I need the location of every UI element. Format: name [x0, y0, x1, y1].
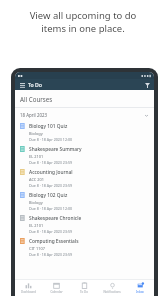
staticText: View all upcoming to do items in one pla…	[8, 9, 158, 35]
button[interactable]: Biology 102 Quiz	[15, 190, 154, 213]
staticText: EL 2101	[29, 223, 44, 228]
button[interactable]: Inbox	[126, 280, 154, 296]
staticText: Notifications	[103, 290, 121, 294]
staticText: Shakespeare Summary	[29, 146, 82, 153]
staticText: All Courses	[20, 95, 53, 103]
staticText: Calendar	[50, 290, 63, 294]
staticText: Due 8 · 18 Apr 2023 12:00	[29, 206, 73, 211]
button[interactable]: Shakespeare Chronicle	[15, 213, 154, 236]
button[interactable]: Dashboard	[15, 280, 42, 296]
staticText: Dashboard	[21, 290, 36, 294]
button[interactable]: To Do	[28, 81, 43, 88]
button[interactable]: Shakespeare Summary	[15, 144, 154, 167]
staticText: ACC 201	[29, 177, 44, 182]
staticText: To Do	[80, 290, 88, 294]
button[interactable]: Open navigation menu	[18, 81, 26, 89]
staticText: Accounting Journal	[29, 169, 73, 176]
staticText: Due 8 · 18 Apr 2023 23:59	[29, 229, 73, 234]
staticText: Biology	[29, 131, 43, 136]
button[interactable]: Collapse section	[143, 112, 149, 118]
staticText: CIT 1107	[29, 246, 45, 251]
button[interactable]: Biology 101 Quiz	[15, 121, 154, 144]
button[interactable]: Notifications	[98, 280, 126, 296]
button[interactable]: Filter	[143, 81, 151, 89]
button[interactable]: To Do	[70, 280, 98, 296]
staticText: 18 April 2023	[20, 112, 47, 118]
staticText: Inbox	[136, 290, 144, 294]
staticText: EL 2101	[29, 154, 44, 159]
staticText: Due 8 · 18 Apr 2023 23:59	[29, 183, 73, 188]
button[interactable]: Calendar	[42, 280, 70, 296]
staticText: Due 8 · 18 Apr 2023 23:59	[29, 252, 73, 257]
staticText: Biology 101 Quiz	[29, 123, 68, 130]
staticText: Biology	[29, 200, 43, 205]
button[interactable]: Accounting Journal	[15, 167, 154, 190]
staticText: Biology 102 Quiz	[29, 192, 68, 199]
button[interactable]: Computing Essentials	[15, 236, 154, 259]
staticText: Shakespeare Chronicle	[29, 215, 82, 222]
staticText: Due 8 · 18 Apr 2023 12:00	[29, 137, 73, 142]
staticText: Due 8 · 18 Apr 2023 23:59	[29, 160, 73, 165]
staticText: Computing Essentials	[29, 238, 79, 245]
